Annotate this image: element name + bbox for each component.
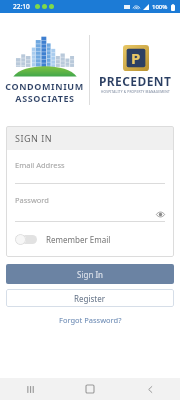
staticText: HOSPITALITY & PROPERTY MANAGEMENT (101, 90, 170, 94)
staticText: P (131, 48, 141, 68)
button[interactable]: Email Address (6, 150, 174, 184)
button[interactable]: Forgot Password? (53, 313, 128, 327)
button[interactable]: Remember Email (6, 222, 174, 257)
staticText: 22:10 (13, 2, 30, 11)
staticText: Remember Email (46, 234, 111, 245)
staticText: Email Address (15, 160, 65, 170)
button[interactable]: Password (6, 184, 174, 222)
button[interactable]: Home (60, 378, 120, 400)
staticText: CONDOMINIUM (5, 80, 84, 92)
staticText: ASSOCIATES (15, 92, 75, 104)
button[interactable]: Register (6, 289, 174, 307)
staticText: SIGN IN (15, 132, 53, 144)
staticText: 100% (152, 3, 168, 11)
button[interactable]: Back (120, 378, 180, 400)
button[interactable]: Sign In (6, 264, 174, 284)
staticText: Sign In (77, 269, 104, 280)
staticText: PRECEDENT (99, 73, 172, 89)
button[interactable]: Show password (155, 209, 165, 219)
staticText: Register (74, 293, 106, 304)
staticText: Password (15, 195, 49, 205)
button[interactable]: Recent apps (0, 378, 60, 400)
